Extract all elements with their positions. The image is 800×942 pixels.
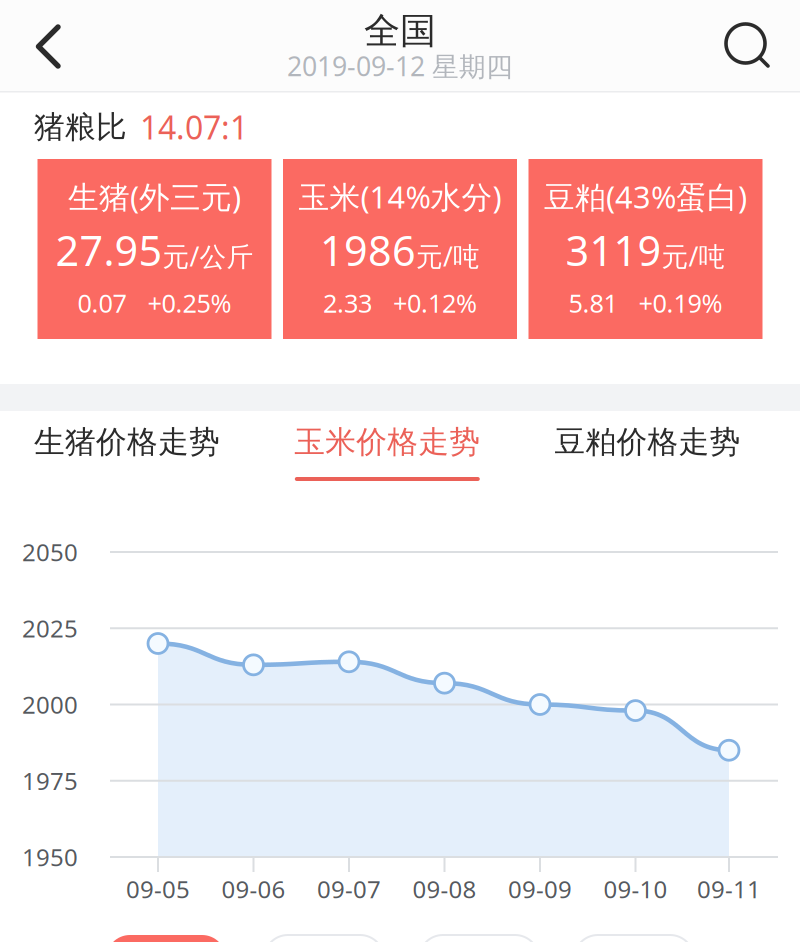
button[interactable]: 生猪(外三元) — [37, 159, 271, 339]
button[interactable]: 豆粕(43%蛋白) — [528, 159, 762, 339]
staticText: 全国 — [364, 9, 436, 53]
staticText: 1986 — [320, 223, 416, 277]
button[interactable]: Back — [0, 0, 82, 90]
staticText: 1950 — [22, 841, 78, 873]
button[interactable]: Filter option — [419, 935, 539, 942]
staticText: 豆粕(43%蛋白) — [544, 176, 747, 217]
staticText: 27.95 — [55, 223, 162, 277]
staticText: 2050 — [22, 536, 78, 568]
staticText: 14.07:1 — [140, 106, 248, 148]
staticText: 09-08 — [412, 873, 476, 905]
button[interactable]: Filter selected — [106, 935, 226, 942]
button[interactable]: Search — [714, 0, 800, 90]
button[interactable]: 玉米价格走势 — [257, 411, 517, 521]
staticText: 09-07 — [317, 873, 381, 905]
staticText: 元/吨 — [416, 238, 480, 274]
button[interactable]: Filter option — [574, 935, 694, 942]
button[interactable]: Filter option — [264, 935, 384, 942]
staticText: 09-09 — [508, 873, 572, 905]
button[interactable]: 生猪价格走势 — [0, 411, 257, 521]
staticText: 2025 — [22, 612, 78, 644]
staticText: 3119 — [565, 223, 661, 277]
staticText: 元/吨 — [661, 238, 725, 274]
staticText: 5.81 +0.19% — [568, 286, 722, 320]
staticText: 豆粕价格走势 — [554, 423, 740, 461]
staticText: 2019-09-12 星期四 — [287, 48, 513, 84]
staticText: 2000 — [22, 689, 78, 720]
staticText: 2.33 +0.12% — [323, 286, 477, 320]
staticText: 1975 — [22, 765, 78, 797]
staticText: 猪粮比 — [34, 108, 127, 146]
staticText: 玉米价格走势 — [294, 423, 480, 461]
staticText: 09-10 — [603, 873, 667, 905]
staticText: 生猪价格走势 — [34, 423, 220, 461]
staticText: 09-05 — [126, 873, 190, 905]
button[interactable]: 豆粕价格走势 — [517, 411, 777, 521]
button[interactable]: 玉米(14%水分) — [283, 159, 517, 339]
staticText: 玉米(14%水分) — [298, 176, 501, 217]
staticText: 元/公斤 — [162, 238, 253, 274]
staticText: 09-11 — [697, 873, 761, 905]
staticText: 0.07 +0.25% — [77, 286, 231, 320]
staticText: 生猪(外三元) — [68, 176, 241, 217]
staticText: 09-06 — [221, 873, 285, 905]
